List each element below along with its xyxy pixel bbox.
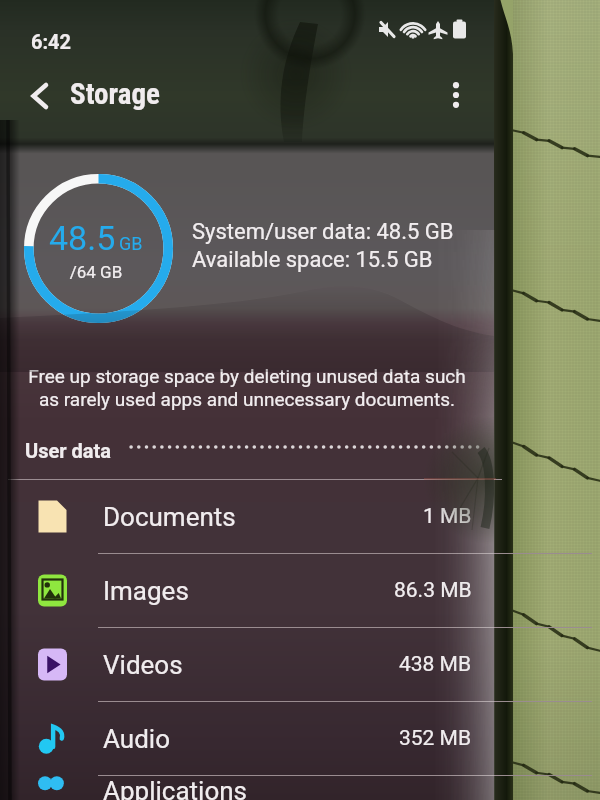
button[interactable]: Videos [0,627,494,701]
button[interactable]: Documents [0,480,494,553]
staticText: 1 MB [423,504,472,529]
staticText: Available space: 15.5 GB [192,247,433,273]
staticText: 86.3 MB [394,578,472,603]
button[interactable]: Back [18,68,60,122]
staticText: Videos [103,650,183,680]
staticText: Applications [103,776,247,800]
staticText: /64 GB [23,262,169,282]
staticText: 438 MB [399,652,472,677]
staticText: User data [25,439,111,462]
staticText: Audio [103,724,170,754]
button[interactable]: More options [437,67,475,123]
staticText: GB [119,233,143,254]
button[interactable]: Audio [0,701,494,775]
staticText: 48.5 [49,218,116,258]
staticText: Images [103,576,189,606]
staticText: Storage [70,77,160,111]
staticText: 6:42 [31,30,72,53]
staticText: Documents [103,502,236,532]
staticText: as rarely used apps and unnecessary docu… [0,388,494,410]
staticText: Free up storage space by deleting unused… [0,365,494,387]
button[interactable]: Applications [0,775,494,800]
button[interactable]: Images [0,553,494,627]
staticText: 352 MB [399,726,472,751]
staticText: System/user data: 48.5 GB [192,219,454,245]
